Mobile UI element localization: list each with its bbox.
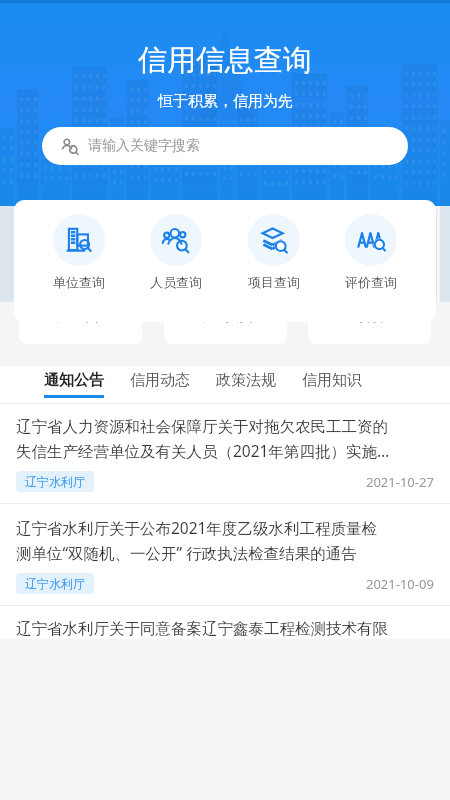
- button[interactable]: 请输入关键字搜索: [42, 127, 408, 165]
- button[interactable]: 项目查询: [242, 214, 306, 290]
- button[interactable]: 1365: [19, 247, 142, 344]
- staticText: 人员查询: [150, 274, 202, 290]
- button[interactable]: 通知公告: [44, 371, 104, 398]
- button[interactable]: 政策法规: [216, 371, 276, 398]
- staticText: 从业人员: [200, 308, 252, 324]
- staticText: 个: [394, 283, 407, 299]
- button[interactable]: 辽宁省水利厅关于公布2021年度乙级水利工程质量检 测单位“双随机、一公开” 行…: [0, 504, 450, 605]
- button[interactable]: 2639: [308, 247, 431, 344]
- staticText: 汇总: [29, 218, 61, 238]
- button[interactable]: 单位查询: [47, 214, 111, 290]
- staticText: 信用知识: [302, 371, 362, 390]
- staticText: 80780: [181, 268, 253, 302]
- staticText: 辽宁水利厅: [25, 576, 85, 591]
- button[interactable]: 人员查询: [144, 214, 208, 290]
- staticText: 2639: [332, 268, 390, 302]
- button[interactable]: 辽宁省水利厅关于同意备案辽宁鑫泰工程检测技术有限: [0, 606, 450, 639]
- staticText: 建设项目: [344, 308, 396, 324]
- staticText: 信用动态: [130, 371, 190, 390]
- button[interactable]: 评价查询: [339, 214, 403, 290]
- button[interactable]: 辽宁省人力资源和社会保障厅关于对拖欠农民工工资的 失信生产经营单位及有关人员（2…: [0, 404, 450, 503]
- staticText: 政策法规: [216, 371, 276, 390]
- staticText: 恒于积累，信用为先: [158, 92, 293, 111]
- staticText: 2021-10-09: [366, 575, 434, 593]
- staticText: 评价查询: [345, 274, 397, 290]
- staticText: 辽宁水利厅: [25, 474, 85, 489]
- staticText: 从业单位: [55, 308, 107, 324]
- staticText: 信用信息查询: [138, 42, 312, 79]
- staticText: 辽宁省水利厅关于公布2021年度乙级水利工程质量检 测单位“双随机、一公开” 行…: [16, 517, 377, 563]
- button[interactable]: 信用知识: [302, 371, 362, 398]
- button[interactable]: 信用动态: [130, 371, 190, 398]
- staticText: 人: [257, 283, 270, 299]
- button[interactable]: 80780: [164, 247, 287, 344]
- staticText: 项目查询: [248, 274, 300, 290]
- staticText: 1365: [43, 268, 101, 302]
- staticText: 辽宁省人力资源和社会保障厅关于对拖欠农民工工资的 失信生产经营单位及有关人员（2…: [16, 417, 390, 461]
- staticText: 通知公告: [44, 371, 104, 390]
- staticText: 单位查询: [53, 274, 105, 290]
- staticText: 辽宁省水利厅关于同意备案辽宁鑫泰工程检测技术有限: [16, 619, 388, 639]
- staticText: 2021-10-27: [366, 473, 434, 491]
- staticText: 请输入关键字搜索: [88, 137, 200, 155]
